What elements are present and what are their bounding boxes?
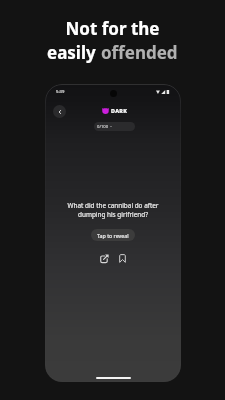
- staticText: offended: [101, 41, 178, 64]
- staticText: 0/100: [97, 124, 109, 130]
- staticText: What did the cannibal do after dumping h…: [61, 201, 165, 219]
- staticText: 5:39: [56, 89, 65, 95]
- button[interactable]: 0/100: [94, 122, 135, 131]
- staticText: Tap to reveal: [97, 232, 129, 239]
- staticText: DARK: [111, 107, 128, 114]
- button[interactable]: Bookmark: [118, 254, 127, 263]
- button[interactable]: Share: [100, 254, 109, 263]
- staticText: Not for the: [65, 17, 160, 40]
- button[interactable]: Tap to reveal: [91, 229, 135, 241]
- button[interactable]: Back: [53, 105, 66, 118]
- staticText: easily: [47, 41, 101, 64]
